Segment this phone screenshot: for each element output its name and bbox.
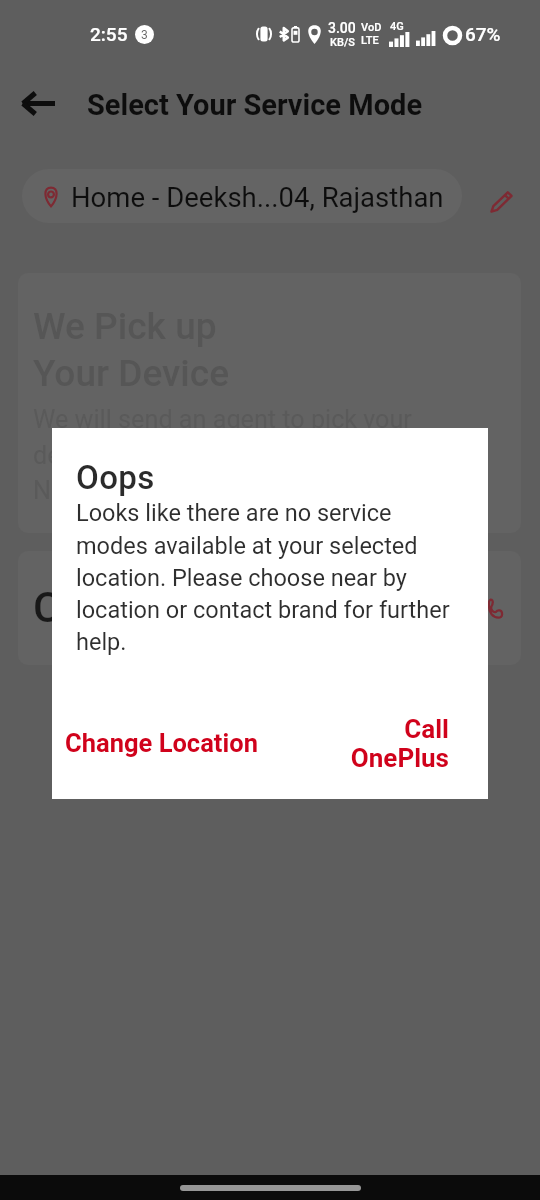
staticText: Oops <box>76 458 155 497</box>
staticText: Select Your Service Mode <box>87 88 423 122</box>
staticText: Call OnePlus <box>311 714 449 773</box>
staticText: VoD <box>361 21 382 34</box>
button[interactable]: Change Location <box>57 722 266 764</box>
button[interactable]: Back <box>5 70 71 136</box>
staticText: Change Location <box>65 728 258 758</box>
staticText: 3.00 <box>328 20 356 36</box>
button[interactable]: Home - Deeksh...04, Rajasthan <box>22 169 462 223</box>
staticText: 3 <box>141 28 148 42</box>
button[interactable]: Call OnePlus <box>303 708 457 779</box>
button[interactable]: Call Us <box>18 551 521 665</box>
staticText: 67% <box>465 23 501 45</box>
staticText: KB/S <box>330 36 355 48</box>
staticText: We will send an agent to pick your devic… <box>33 405 412 505</box>
staticText: We Pick up Your Device <box>33 305 230 395</box>
staticText: 4G <box>390 20 404 33</box>
staticText: LTE <box>361 34 379 47</box>
staticText: 2:55 <box>90 23 128 45</box>
button[interactable]: Edit address <box>477 177 526 226</box>
staticText: Looks like there are no service modes av… <box>76 499 456 655</box>
staticText: Call Us <box>33 582 168 632</box>
button[interactable]: We Pick up Your Device <box>18 273 521 533</box>
staticText: Home - Deeksh...04, Rajasthan <box>71 181 444 213</box>
